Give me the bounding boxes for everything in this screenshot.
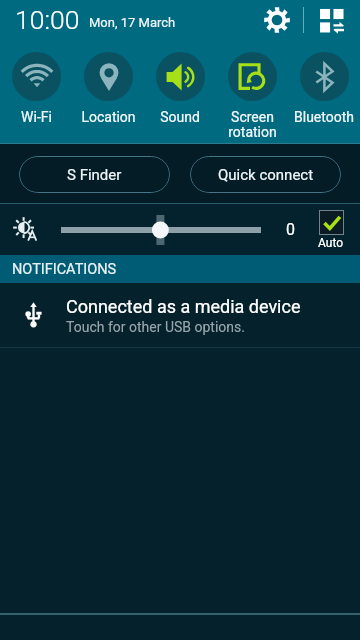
- button[interactable]: Connected as a media device: [0, 283, 360, 347]
- staticText: S Finder: [67, 166, 122, 184]
- staticText: Screen rotation: [228, 109, 277, 141]
- staticText: 10:00: [15, 4, 80, 35]
- staticText: Quick connect: [218, 166, 314, 184]
- button[interactable]: Bluetooth: [288, 0, 360, 143]
- staticText: Location: [81, 109, 136, 125]
- button[interactable]: Sound: [144, 0, 216, 143]
- staticText: 0: [286, 220, 295, 239]
- button[interactable]: Wi-Fi: [0, 0, 72, 143]
- staticText: Wi-Fi: [21, 109, 52, 125]
- staticText: Connected as a media device: [66, 296, 301, 317]
- staticText: Mon, 17 March: [89, 15, 176, 30]
- staticText: Sound: [160, 109, 200, 125]
- button[interactable]: Screen rotation: [216, 0, 288, 143]
- staticText: Bluetooth: [294, 109, 354, 125]
- staticText: Touch for other USB options.: [66, 319, 245, 335]
- button[interactable]: Location: [72, 0, 144, 143]
- button[interactable]: Auto: [318, 210, 344, 250]
- staticText: Auto: [318, 236, 344, 250]
- button[interactable]: Brightness: [55, 213, 267, 247]
- button[interactable]: Settings: [259, 2, 295, 38]
- staticText: NOTIFICATIONS: [12, 261, 117, 278]
- button[interactable]: S Finder: [19, 156, 170, 193]
- button[interactable]: Quick connect: [190, 156, 341, 193]
- button[interactable]: Edit quick settings: [314, 2, 350, 38]
